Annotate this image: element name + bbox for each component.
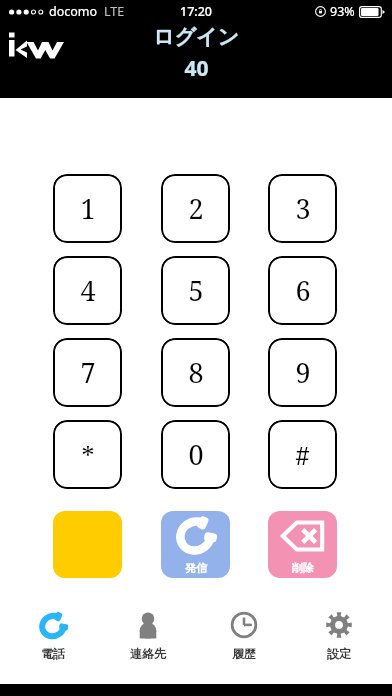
button[interactable]: 履歴 xyxy=(201,606,287,663)
staticText: 設定 xyxy=(327,646,351,661)
staticText: 電話 xyxy=(41,646,65,661)
staticText: 連絡先 xyxy=(130,646,166,661)
staticText: 17:20 xyxy=(180,3,213,20)
button[interactable]: # xyxy=(268,420,337,489)
button[interactable]: 機能 xyxy=(53,511,122,578)
staticText: 8 xyxy=(188,354,204,391)
button[interactable]: 9 xyxy=(268,338,337,407)
staticText: 履歴 xyxy=(232,646,256,661)
staticText: 0 xyxy=(188,436,204,473)
button[interactable]: 1 xyxy=(53,174,122,243)
staticText: 発信 xyxy=(185,561,207,575)
button[interactable]: 5 xyxy=(161,256,230,325)
button[interactable]: 3 xyxy=(268,174,337,243)
button[interactable]: 連絡先 xyxy=(105,606,191,663)
button[interactable]: 0 xyxy=(161,420,230,489)
staticText: 40 xyxy=(184,54,209,83)
button[interactable]: 8 xyxy=(161,338,230,407)
staticText: 9 xyxy=(295,354,311,391)
staticText: * xyxy=(81,437,95,472)
button[interactable]: 発信 xyxy=(161,511,230,578)
button[interactable]: * xyxy=(53,420,122,489)
staticText: 5 xyxy=(188,272,204,309)
button[interactable]: 設定 xyxy=(296,606,382,663)
staticText: 7 xyxy=(80,354,96,391)
button[interactable]: 7 xyxy=(53,338,122,407)
button[interactable]: 2 xyxy=(161,174,230,243)
staticText: 3 xyxy=(295,190,311,227)
staticText: LTE xyxy=(104,3,125,20)
button[interactable]: 4 xyxy=(53,256,122,325)
staticText: docomo xyxy=(49,3,98,20)
staticText: 削除 xyxy=(292,561,314,575)
staticText: 6 xyxy=(295,272,311,309)
staticText: 1 xyxy=(80,190,96,227)
button[interactable]: 6 xyxy=(268,256,337,325)
button[interactable]: 削除 xyxy=(268,511,337,578)
staticText: 2 xyxy=(188,190,204,227)
staticText: 93% xyxy=(330,3,355,20)
staticText: # xyxy=(295,437,310,472)
button[interactable]: 電話 xyxy=(10,606,96,663)
staticText: ログイン xyxy=(153,24,239,50)
staticText: 4 xyxy=(80,272,96,309)
